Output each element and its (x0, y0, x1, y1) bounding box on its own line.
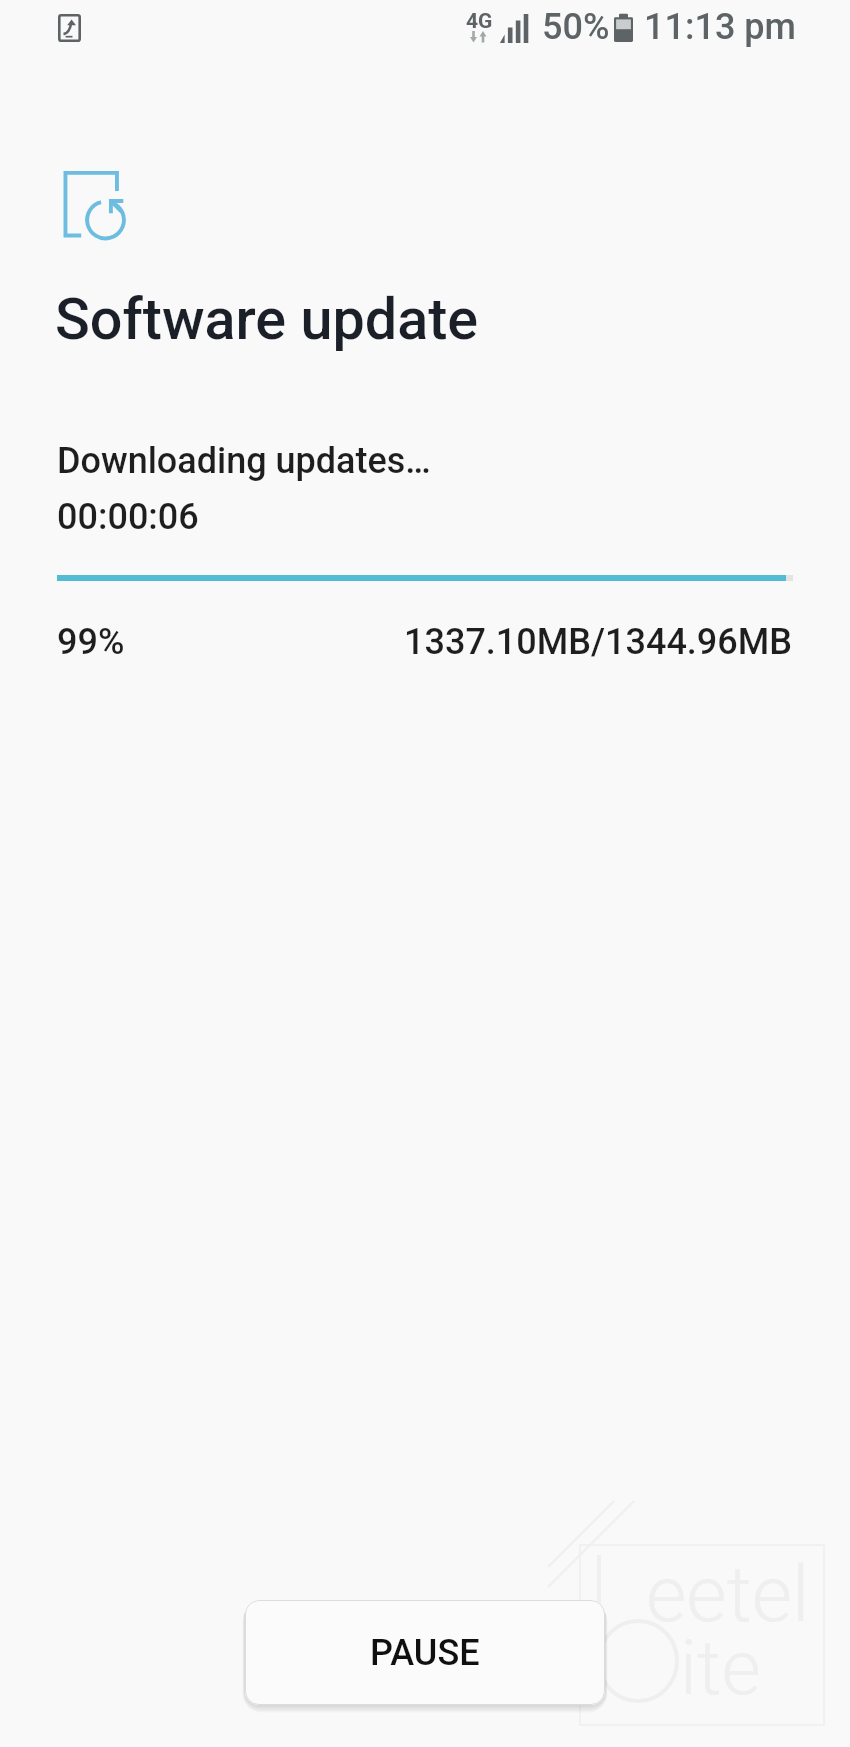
staticText: 4G (466, 9, 493, 34)
staticText: Software update (55, 286, 479, 353)
staticText: 50% (542, 6, 610, 48)
staticText: eetel (646, 1549, 810, 1640)
staticText: PAUSE (370, 1632, 480, 1674)
staticText: 99% (57, 621, 125, 663)
staticText: 11:13 pm (644, 6, 796, 48)
staticText: ite (680, 1623, 761, 1712)
staticText: 1337.10MB/1344.96MB (404, 621, 793, 663)
button[interactable]: PAUSE (245, 1600, 605, 1705)
other: Software update (62, 169, 130, 245)
other: Software update available (58, 14, 81, 42)
staticText: Downloading updates… (57, 440, 431, 482)
staticText: 00:00:06 (57, 496, 199, 538)
